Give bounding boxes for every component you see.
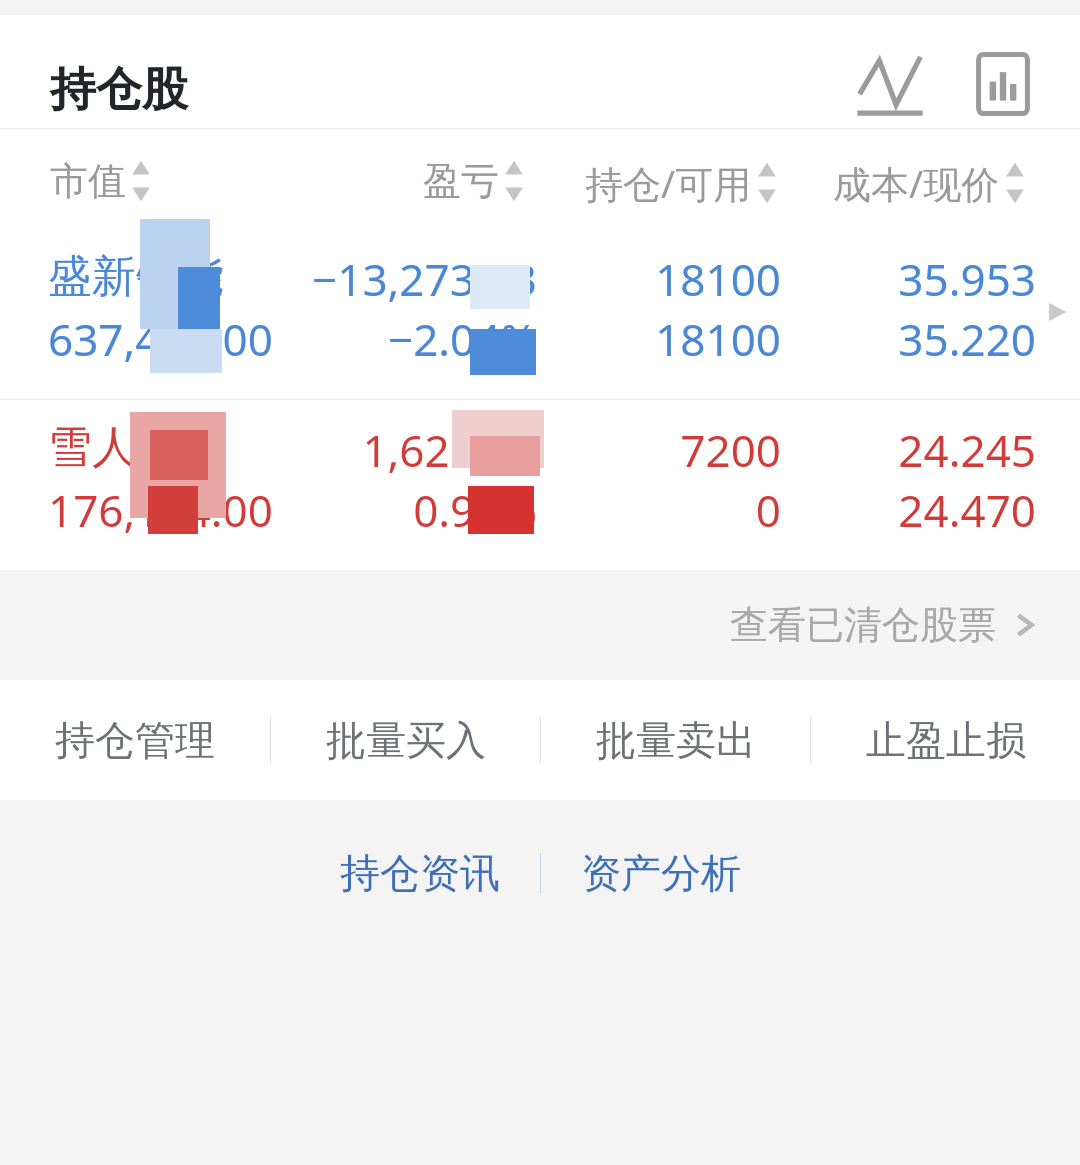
staticText: 1,621.50 (217, 420, 537, 480)
staticText: 176,184.00 (48, 480, 273, 540)
staticText: 持仓/可用 (585, 157, 752, 209)
staticText: 止盈止损 (866, 715, 1026, 765)
staticText: 盈亏 (423, 157, 499, 205)
staticText: 637,433.00 (48, 309, 273, 369)
staticText: 成本/现价 (833, 157, 1000, 209)
button[interactable]: Bar chart (966, 47, 1040, 121)
staticText: 批量卖出 (596, 715, 756, 765)
button[interactable]: 雪人集团 (0, 400, 1080, 570)
button[interactable]: 持仓管理 (0, 680, 270, 800)
staticText: 18100 (461, 309, 781, 369)
button[interactable]: 持仓/可用 (585, 157, 778, 209)
button[interactable]: 盈亏 (423, 157, 525, 205)
staticText: 持仓股 (50, 61, 188, 119)
staticText: 24.245 (716, 420, 1036, 480)
button[interactable]: 持仓资讯 (334, 848, 506, 898)
staticText: 35.953 (716, 249, 1036, 309)
button[interactable]: 资产分析 (575, 848, 747, 898)
staticText: 雪人集团 (48, 420, 224, 475)
button[interactable]: 查看已清仓股票 (0, 570, 1080, 680)
staticText: 持仓资讯 (340, 848, 500, 898)
staticText: 资产分析 (581, 848, 741, 898)
button[interactable]: 市值 (50, 157, 152, 205)
staticText: 24.470 (716, 480, 1036, 540)
staticText: 市值 (50, 157, 126, 205)
button[interactable]: 批量买入 (271, 680, 540, 800)
button[interactable]: 止盈止损 (811, 680, 1080, 800)
staticText: 7200 (461, 420, 781, 480)
staticText: −13,273.13 (217, 249, 537, 309)
button[interactable]: 成本/现价 (833, 157, 1026, 209)
staticText: 0.93% (217, 480, 537, 540)
staticText: 18100 (461, 249, 781, 309)
button[interactable]: Line chart (852, 47, 928, 123)
staticText: −2.04% (217, 309, 537, 369)
staticText: 盛新锂能 (48, 249, 224, 304)
button[interactable]: 盛新锂能 (0, 229, 1080, 399)
staticText: 0 (461, 480, 781, 540)
staticText: 持仓管理 (55, 715, 215, 765)
staticText: 批量买入 (326, 715, 486, 765)
button[interactable]: 批量卖出 (541, 680, 810, 800)
staticText: 35.220 (716, 309, 1036, 369)
staticText: 查看已清仓股票 (730, 601, 996, 649)
